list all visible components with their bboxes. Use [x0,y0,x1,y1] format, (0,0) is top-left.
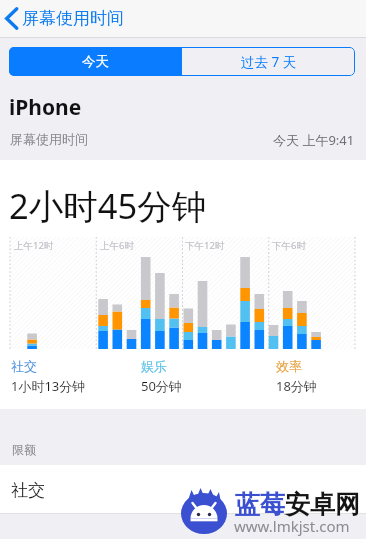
staticText: 效率 [276,358,302,374]
staticText: www.lmkjst.com [234,516,350,536]
staticText: 今天 上午9:41 [273,131,355,149]
staticText: 安卓网 [285,489,360,520]
staticText: 社交 [11,358,37,374]
staticText: 下午6时 [272,239,306,252]
staticText: 屏幕使用时间 [22,8,124,29]
button[interactable]: 过去 7 天 [182,47,355,76]
staticText: 50分钟 [141,377,182,395]
button[interactable]: 今天 [9,47,182,76]
staticText: 娱乐 [141,358,167,374]
staticText: iPhone [9,93,82,122]
staticText: 今天 [82,53,109,70]
button[interactable]: 屏幕使用时间 [4,0,366,37]
staticText: 18分钟 [276,377,317,395]
staticText: 上午6时 [100,239,134,252]
staticText: 限额 [12,442,36,457]
staticText: 过去 7 天 [241,53,297,71]
staticText: 1小时13分钟 [11,377,86,395]
staticText: 蓝莓 [235,489,285,520]
staticText: 屏幕使用时间 [10,131,88,147]
button[interactable]: 社交 [0,465,366,514]
staticText: 社交 [11,480,45,501]
staticText: 2小时45分钟 [9,182,207,229]
staticText: 下午12时 [185,239,225,252]
staticText: 上午12时 [14,239,54,252]
